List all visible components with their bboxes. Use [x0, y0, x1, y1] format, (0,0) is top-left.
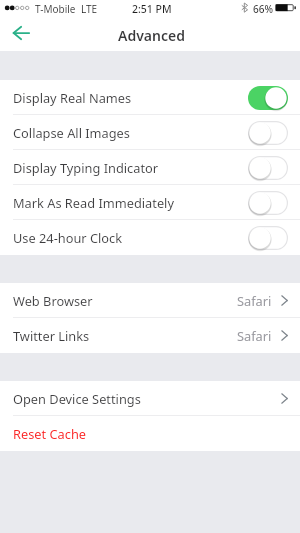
button[interactable]: Mark As Read Immediately	[0, 185, 300, 220]
staticText: 66%	[253, 2, 273, 16]
staticText: Reset Cache	[13, 425, 87, 442]
button[interactable]: Collapse All Images	[0, 115, 300, 150]
button[interactable]: Open Device Settings	[0, 381, 300, 416]
button[interactable]: Display Real Names	[0, 80, 300, 115]
staticText: Twitter Links	[13, 327, 90, 344]
button[interactable]: Reset Cache	[0, 416, 300, 451]
staticText: 2:51 PM	[132, 2, 172, 16]
button[interactable]: Web Browser	[0, 283, 300, 318]
staticText: Use 24-hour Clock	[13, 229, 123, 246]
button[interactable]: Display Typing Indicator	[0, 150, 300, 185]
staticText: Display Typing Indicator	[13, 159, 159, 176]
staticText: Display Real Names	[13, 89, 132, 106]
button[interactable]: Use 24-hour Clock	[0, 220, 300, 255]
staticText: Mark As Read Immediately	[13, 194, 174, 211]
staticText: T-Mobile	[35, 2, 76, 16]
staticText: Advanced	[118, 26, 185, 45]
staticText: Open Device Settings	[13, 390, 141, 407]
staticText: Safari	[237, 327, 272, 344]
staticText: Safari	[237, 292, 272, 309]
staticText: LTE	[81, 2, 98, 16]
button[interactable]: Twitter Links	[0, 318, 300, 353]
staticText: Collapse All Images	[13, 124, 130, 141]
button[interactable]: Back	[0, 18, 33, 51]
staticText: Web Browser	[13, 292, 93, 309]
